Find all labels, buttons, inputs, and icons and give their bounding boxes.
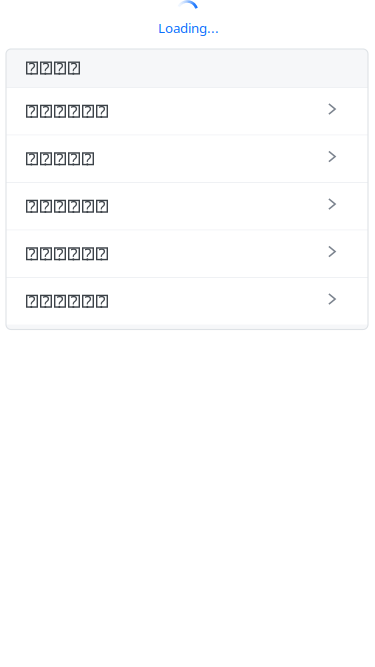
staticText: ? xyxy=(98,101,105,122)
staticText: ? xyxy=(42,101,49,122)
staticText: ? xyxy=(84,244,91,265)
staticText: ? xyxy=(56,149,63,170)
staticText: ? xyxy=(28,149,35,170)
staticText: ? xyxy=(98,244,105,265)
button[interactable]: List item 4 xyxy=(6,230,368,277)
staticText: ? xyxy=(98,196,105,217)
staticText: ? xyxy=(42,196,49,217)
staticText: ? xyxy=(70,196,77,217)
button[interactable]: List item 2 xyxy=(6,135,368,182)
staticText: ? xyxy=(28,101,35,122)
staticText: ? xyxy=(28,58,35,79)
staticText: ? xyxy=(28,196,35,217)
staticText: ? xyxy=(56,291,63,312)
staticText: ? xyxy=(84,101,91,122)
staticText: ? xyxy=(70,101,77,122)
staticText: ? xyxy=(56,101,63,122)
staticText: ? xyxy=(84,291,91,312)
staticText: ? xyxy=(84,196,91,217)
button[interactable]: List item 1 xyxy=(6,88,368,134)
staticText: ? xyxy=(84,149,91,170)
staticText: ? xyxy=(56,196,63,217)
staticText: ? xyxy=(42,58,49,79)
staticText: ? xyxy=(42,244,49,265)
staticText: ? xyxy=(70,244,77,265)
staticText: ? xyxy=(56,58,63,79)
staticText: Loading... xyxy=(158,19,219,37)
staticText: ? xyxy=(70,291,77,312)
staticText: ? xyxy=(42,291,49,312)
staticText: ? xyxy=(98,291,105,312)
staticText: ? xyxy=(42,149,49,170)
staticText: ? xyxy=(70,149,77,170)
staticText: ? xyxy=(70,58,77,79)
button[interactable]: List item 5 xyxy=(6,278,368,324)
staticText: ? xyxy=(56,244,63,265)
staticText: ? xyxy=(28,244,35,265)
staticText: ? xyxy=(28,291,35,312)
button[interactable]: List item 3 xyxy=(6,183,368,229)
